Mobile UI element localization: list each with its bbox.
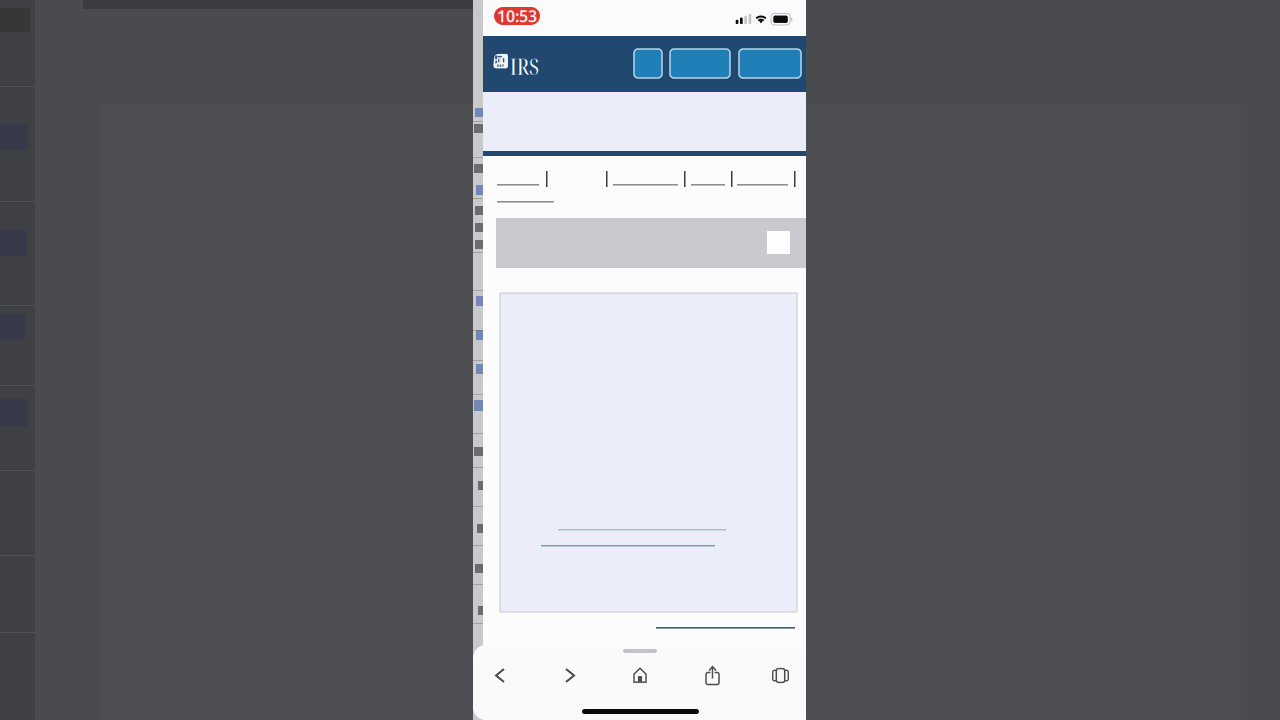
button[interactable]: IRS home: [492, 55, 544, 77]
button[interactable]: Home: [633, 668, 646, 682]
button[interactable]: Español: [670, 49, 730, 78]
button[interactable]: Back: [496, 669, 504, 682]
button[interactable]: Sign in: [739, 49, 801, 78]
staticText: 10:53: [497, 5, 537, 27]
button[interactable]: Share: [704, 663, 718, 681]
button[interactable]: Forward: [566, 669, 574, 682]
staticText: IRS: [510, 51, 539, 81]
button[interactable]: Menu: [634, 49, 662, 78]
button[interactable]: Tabs: [769, 668, 785, 682]
